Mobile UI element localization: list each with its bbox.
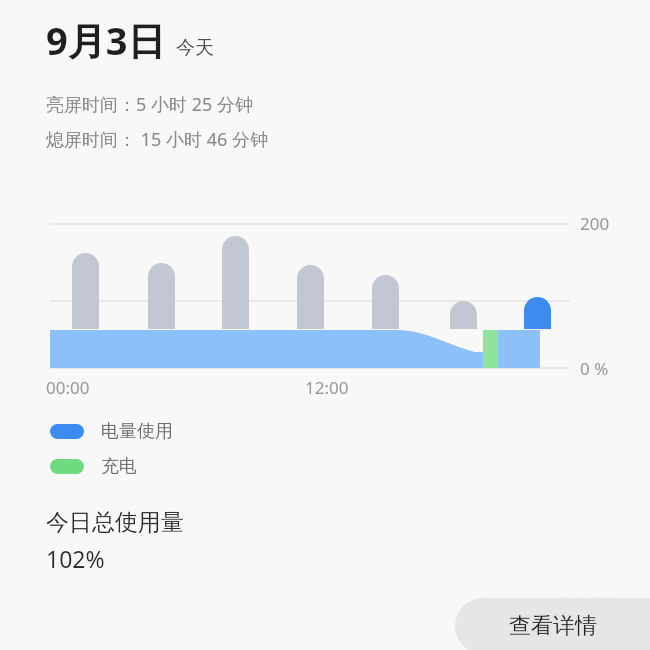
staticText: 今天 xyxy=(176,36,214,60)
staticText: QRSVNW xyxy=(566,622,630,642)
staticText: 今日总使用量 xyxy=(46,508,184,537)
staticText: 0 % xyxy=(580,357,609,380)
staticText: 电量使用 xyxy=(101,420,173,443)
staticText: 102% xyxy=(46,543,105,574)
staticText: 充电 xyxy=(101,455,137,478)
staticText: 9月3日 xyxy=(46,14,166,66)
staticText: 亮屏时间：5 小时 25 分钟 xyxy=(46,92,253,117)
staticText: 盖乐世社区 xyxy=(556,596,631,615)
staticText: 12:00 xyxy=(305,376,349,399)
button[interactable]: 查看详情 xyxy=(455,598,650,650)
staticText: 200 xyxy=(580,212,610,235)
staticText: 00:00 xyxy=(46,376,90,399)
staticText: 熄屏时间： 15 小时 46 分钟 xyxy=(46,127,268,152)
staticText: 查看详情 xyxy=(509,612,597,640)
